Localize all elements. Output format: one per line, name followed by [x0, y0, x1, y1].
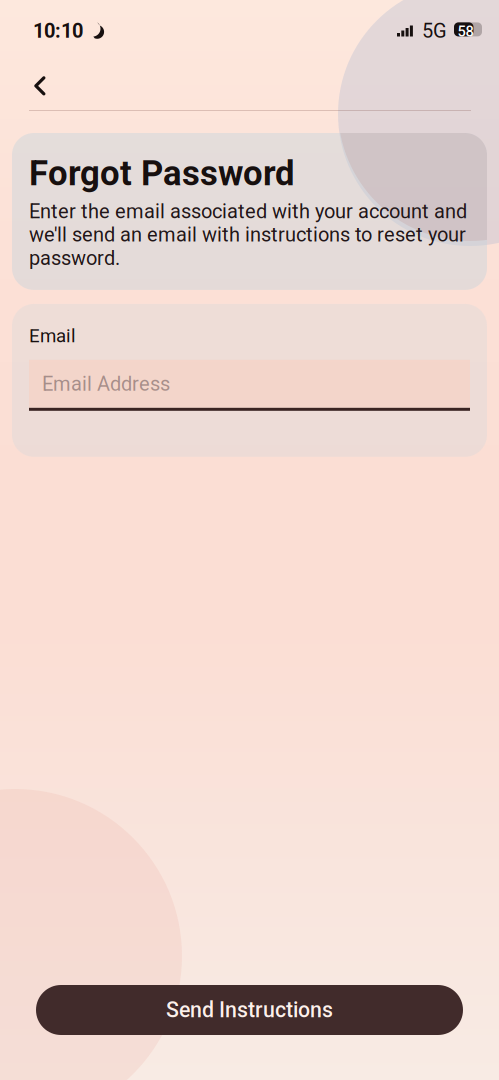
staticText: Email Address	[42, 372, 170, 395]
staticText: 58	[457, 23, 473, 40]
button[interactable]: Back	[17, 62, 63, 110]
staticText: Forgot Password	[29, 153, 295, 194]
staticText: 5G	[422, 19, 447, 43]
button[interactable]: Send Instructions	[36, 985, 463, 1035]
button[interactable]: Email Address	[29, 360, 470, 411]
staticText: Email	[29, 325, 76, 347]
staticText: Enter the email associated with your acc…	[29, 200, 467, 270]
staticText: 10:10	[33, 19, 83, 43]
staticText: Send Instructions	[166, 997, 333, 1022]
